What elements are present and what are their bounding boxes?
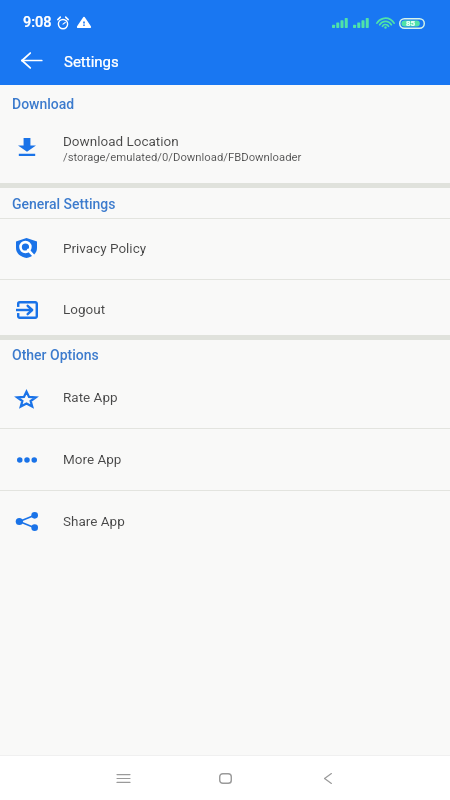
staticText: Rate App	[63, 389, 118, 405]
staticText: General Settings	[12, 196, 116, 212]
button[interactable]: Download Location	[0, 113, 450, 183]
staticText: Privacy Policy	[63, 240, 147, 256]
button[interactable]: Privacy Policy	[0, 219, 450, 279]
button[interactable]: Rate App	[0, 370, 450, 428]
staticText: Download Location	[63, 133, 179, 149]
staticText: Download	[12, 96, 75, 112]
staticText: 9:08	[23, 14, 52, 31]
button[interactable]: Back	[0, 38, 62, 85]
button[interactable]: Home	[201, 756, 249, 800]
staticText: Settings	[64, 53, 119, 71]
staticText: Share App	[63, 513, 125, 529]
staticText: More App	[63, 451, 122, 467]
button[interactable]: Back	[304, 756, 352, 800]
staticText: 85	[406, 19, 416, 28]
button[interactable]: Share App	[0, 491, 450, 552]
button[interactable]: Logout	[0, 280, 450, 335]
button[interactable]: More App	[0, 429, 450, 490]
staticText: Other Options	[12, 347, 99, 363]
staticText: Logout	[63, 301, 106, 317]
button[interactable]: Recent apps	[99, 756, 147, 800]
staticText: /storage/emulated/0/Download/FBDownloade…	[63, 151, 302, 164]
